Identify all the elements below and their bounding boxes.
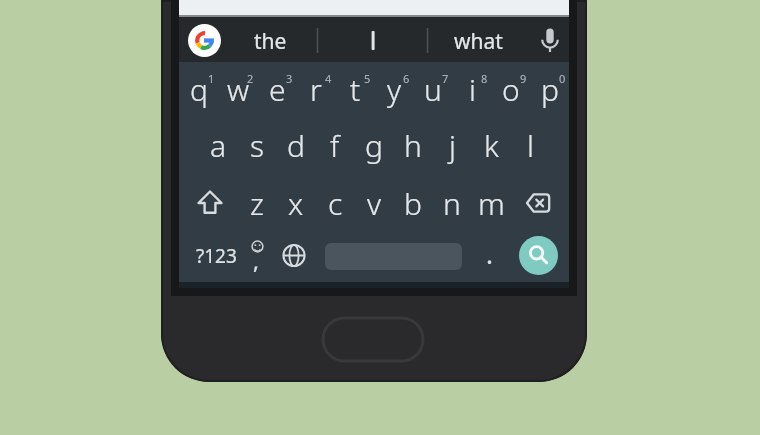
button[interactable]: w [210, 63, 266, 115]
button[interactable]: i [444, 63, 500, 115]
staticText: v [367, 183, 382, 224]
staticText: 9 [520, 71, 527, 86]
button[interactable]: q [171, 63, 227, 115]
staticText: e [269, 69, 286, 110]
staticText: 3 [286, 71, 293, 86]
staticText: , [253, 245, 259, 275]
staticText: 7 [442, 71, 449, 86]
staticText: g [365, 125, 383, 166]
button[interactable] [532, 20, 570, 60]
button[interactable]: c [307, 177, 363, 229]
staticText: f [330, 125, 340, 166]
staticText: 0 [559, 71, 566, 86]
staticText: a [210, 125, 227, 166]
staticText: 8 [481, 71, 488, 86]
button[interactable]: d [268, 119, 324, 171]
button[interactable]: g [346, 119, 402, 171]
button[interactable] [345, 20, 401, 61]
staticText: 4 [325, 71, 332, 86]
button[interactable] [513, 178, 567, 228]
button[interactable]: . [461, 227, 517, 279]
button[interactable]: x [268, 177, 324, 229]
staticText: 6 [403, 71, 410, 86]
button[interactable]: b [385, 177, 441, 229]
button[interactable]: e [249, 63, 305, 115]
button[interactable] [188, 24, 221, 57]
staticText: . [486, 236, 493, 271]
staticText: l [527, 125, 534, 166]
button[interactable]: r [288, 63, 344, 115]
staticText: n [443, 183, 461, 224]
staticText: k [484, 125, 499, 166]
button[interactable] [519, 236, 558, 275]
staticText: w [227, 69, 250, 110]
staticText: d [287, 125, 305, 166]
button[interactable]: o [483, 63, 539, 115]
staticText: ?123 [196, 243, 237, 269]
button[interactable]: the [242, 15, 298, 67]
button[interactable]: j [424, 119, 480, 171]
button[interactable]: l [502, 119, 558, 171]
button[interactable]: p [522, 63, 578, 115]
staticText: z [250, 183, 264, 224]
button[interactable]: h [385, 119, 441, 171]
staticText: o [502, 69, 520, 110]
staticText: j [449, 125, 456, 166]
staticText: t [350, 69, 361, 110]
button[interactable] [183, 178, 237, 228]
staticText: p [541, 69, 559, 110]
staticText: r [310, 69, 322, 110]
staticText: the [254, 27, 287, 56]
staticText: 2 [247, 71, 254, 86]
staticText: x [288, 183, 304, 224]
staticText: s [250, 125, 265, 166]
button[interactable]: a [190, 119, 246, 171]
button[interactable]: k [463, 119, 519, 171]
staticText: 5 [364, 71, 371, 86]
staticText: y [387, 69, 402, 110]
staticText: i [469, 69, 476, 110]
staticText: u [424, 69, 442, 110]
button[interactable] [276, 233, 315, 279]
button[interactable]: f [307, 119, 363, 171]
button[interactable]: s [229, 119, 285, 171]
button[interactable]: v [346, 177, 402, 229]
button[interactable]: n [424, 177, 480, 229]
staticText: c [328, 183, 343, 224]
staticText: 1 [208, 71, 215, 86]
button[interactable]: ?123 [188, 230, 244, 282]
button[interactable]: u [405, 63, 461, 115]
button[interactable]: z [229, 177, 285, 229]
staticText: h [404, 125, 422, 166]
staticText: m [478, 183, 505, 224]
staticText: b [404, 183, 422, 224]
button[interactable]: what [450, 15, 506, 67]
button[interactable]: m [463, 177, 519, 229]
staticText: q [190, 69, 208, 110]
button[interactable]: , [228, 234, 284, 286]
button[interactable]: t [327, 63, 383, 115]
button[interactable]: y [366, 63, 422, 115]
staticText: what [454, 27, 503, 56]
